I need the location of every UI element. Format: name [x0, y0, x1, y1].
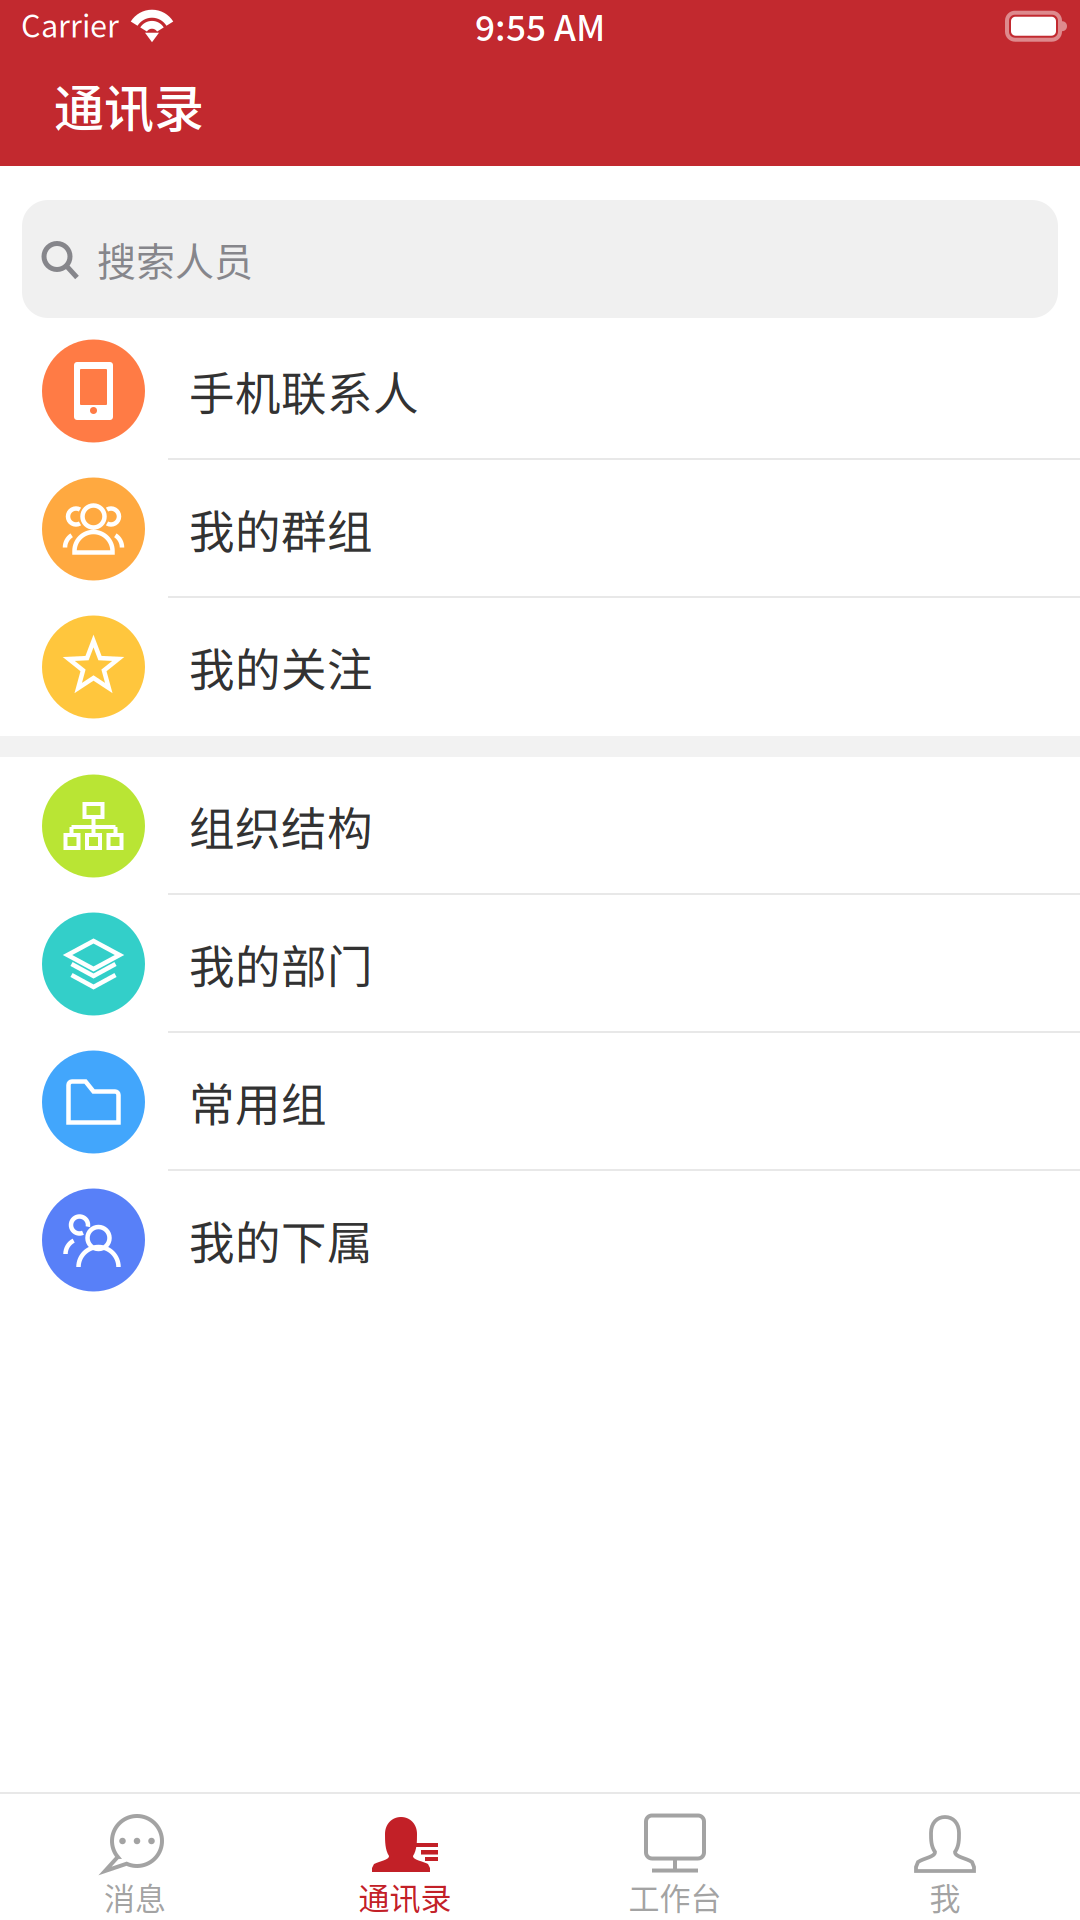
staticText: 通讯录 — [358, 1874, 451, 1919]
staticText: 手机联系人 — [189, 358, 419, 424]
button[interactable]: 我的关注 — [0, 598, 1080, 736]
button[interactable]: 消息 — [0, 1794, 270, 1920]
button[interactable]: 我的下属 — [0, 1171, 1080, 1309]
staticText: 我的下属 — [189, 1207, 373, 1273]
staticText: 工作台 — [628, 1874, 721, 1919]
staticText: 常用组 — [189, 1069, 327, 1135]
button[interactable]: 常用组 — [0, 1033, 1080, 1171]
staticText: 我 — [929, 1874, 960, 1919]
staticText: 搜索人员 — [97, 231, 253, 287]
button[interactable]: 工作台 — [540, 1794, 810, 1920]
button[interactable]: 搜索人员 — [0, 166, 1080, 322]
staticText: 组织结构 — [189, 793, 373, 859]
staticText: Carrier — [21, 2, 119, 46]
staticText: 9:55 AM — [475, 0, 605, 51]
staticText: 消息 — [104, 1874, 166, 1919]
staticText: 通讯录 — [54, 69, 204, 141]
button[interactable]: 手机联系人 — [0, 322, 1080, 460]
button[interactable]: 我的群组 — [0, 460, 1080, 598]
staticText: 我的关注 — [189, 634, 373, 700]
button[interactable]: 我的部门 — [0, 895, 1080, 1033]
staticText: 我的群组 — [189, 496, 373, 562]
button[interactable]: 通讯录 — [270, 1794, 540, 1920]
staticText: 我的部门 — [189, 931, 373, 997]
button[interactable]: 我 — [810, 1794, 1080, 1920]
button[interactable]: 组织结构 — [0, 757, 1080, 895]
